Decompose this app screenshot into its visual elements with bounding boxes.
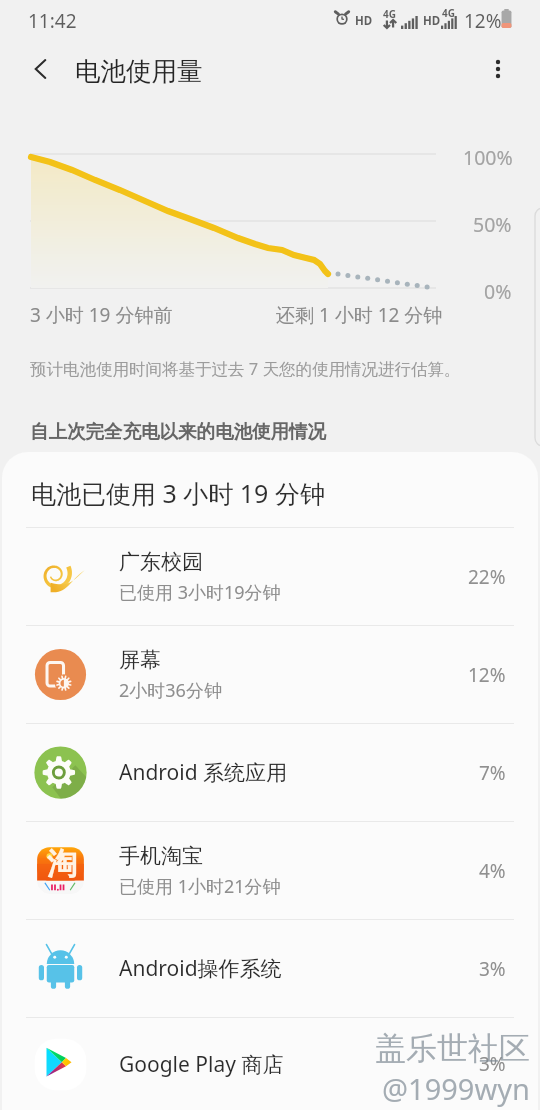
button[interactable]: Android操作系统	[2, 920, 538, 1017]
staticText: @1999wyn	[382, 1069, 530, 1108]
staticText: 4%	[479, 858, 506, 884]
staticText: HD	[355, 13, 373, 29]
staticText: 0%	[484, 278, 512, 305]
staticText: 4G	[383, 7, 396, 21]
staticText: 电池使用量	[75, 55, 203, 87]
staticText: 广东校园	[119, 549, 203, 575]
staticText: 电池已使用 3 小时 19 分钟	[31, 476, 325, 510]
staticText: 盖乐世社区	[375, 1029, 530, 1068]
staticText: 已使用 1小时21分钟	[119, 874, 281, 899]
button[interactable]: Google Play 商店	[2, 1018, 538, 1110]
button[interactable]: 广东校园	[2, 528, 538, 625]
staticText: 3%	[479, 1051, 506, 1077]
staticText: 2小时36分钟	[119, 678, 222, 703]
staticText: 淘	[47, 845, 77, 883]
staticText: 3 小时 19 分钟前	[30, 302, 173, 328]
staticText: 4G	[442, 6, 455, 20]
button[interactable]: 屏幕	[2, 626, 538, 723]
button[interactable]: 淘	[2, 822, 538, 919]
staticText: 50%	[473, 211, 512, 238]
staticText: 12%	[464, 8, 502, 34]
staticText: HD	[423, 13, 441, 29]
staticText: 还剩 1 小时 12 分钟	[276, 302, 443, 328]
button[interactable]: Back	[17, 45, 65, 93]
staticText: 屏幕	[119, 647, 161, 673]
staticText: 12%	[468, 662, 506, 688]
button[interactable]: Android 系统应用	[2, 724, 538, 821]
staticText: 3%	[479, 956, 506, 982]
staticText: 7%	[479, 760, 506, 786]
staticText: 22%	[468, 564, 506, 590]
staticText: Google Play 商店	[119, 1050, 284, 1079]
staticText: 100%	[463, 144, 513, 171]
staticText: 11:42	[28, 8, 77, 34]
staticText: 手机淘宝	[119, 843, 203, 869]
staticText: 预计电池使用时间将基于过去 7 天您的使用情况进行估算。	[30, 357, 461, 380]
staticText: Android操作系统	[119, 954, 282, 983]
staticText: Android 系统应用	[119, 758, 288, 787]
staticText: 自上次完全充电以来的电池使用情况	[30, 420, 326, 443]
staticText: 已使用 3小时19分钟	[119, 580, 281, 605]
button[interactable]: More options	[474, 45, 522, 93]
